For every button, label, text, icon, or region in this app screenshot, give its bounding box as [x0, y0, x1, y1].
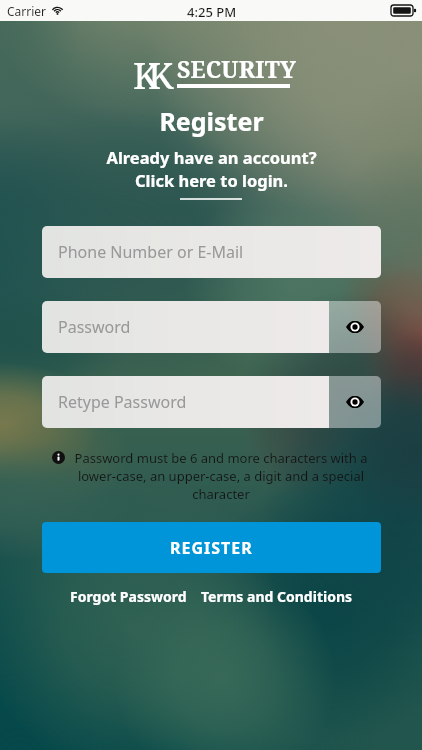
staticText: Register	[159, 104, 264, 138]
staticText: Already have an account?	[106, 146, 317, 168]
staticText: Retype Password	[58, 391, 187, 413]
staticText: Carrier	[7, 3, 47, 19]
staticText: K	[148, 51, 174, 100]
button[interactable]: REGISTER	[42, 522, 381, 573]
staticText: Click here to login.	[135, 169, 288, 191]
staticText: Password must be 6 and more characters w…	[70, 449, 372, 503]
button[interactable]: Terms and Conditions	[201, 587, 353, 606]
staticText: Phone Number or E-Mail	[58, 241, 244, 263]
button[interactable]: Forgot Password	[70, 587, 187, 606]
button[interactable]: Phone Number or E-Mail	[42, 226, 381, 278]
button[interactable]: Retype Password	[42, 376, 329, 428]
button[interactable]: Show password	[329, 376, 381, 428]
staticText: SECURITY	[177, 53, 297, 84]
button[interactable]: Show password	[329, 301, 381, 353]
button[interactable]: Password	[42, 301, 329, 353]
button[interactable]: Already have an account?	[0, 146, 422, 191]
staticText: K	[133, 51, 159, 100]
staticText: 4:25 PM	[187, 3, 237, 21]
staticText: Password	[58, 316, 131, 338]
staticText: REGISTER	[170, 537, 253, 559]
